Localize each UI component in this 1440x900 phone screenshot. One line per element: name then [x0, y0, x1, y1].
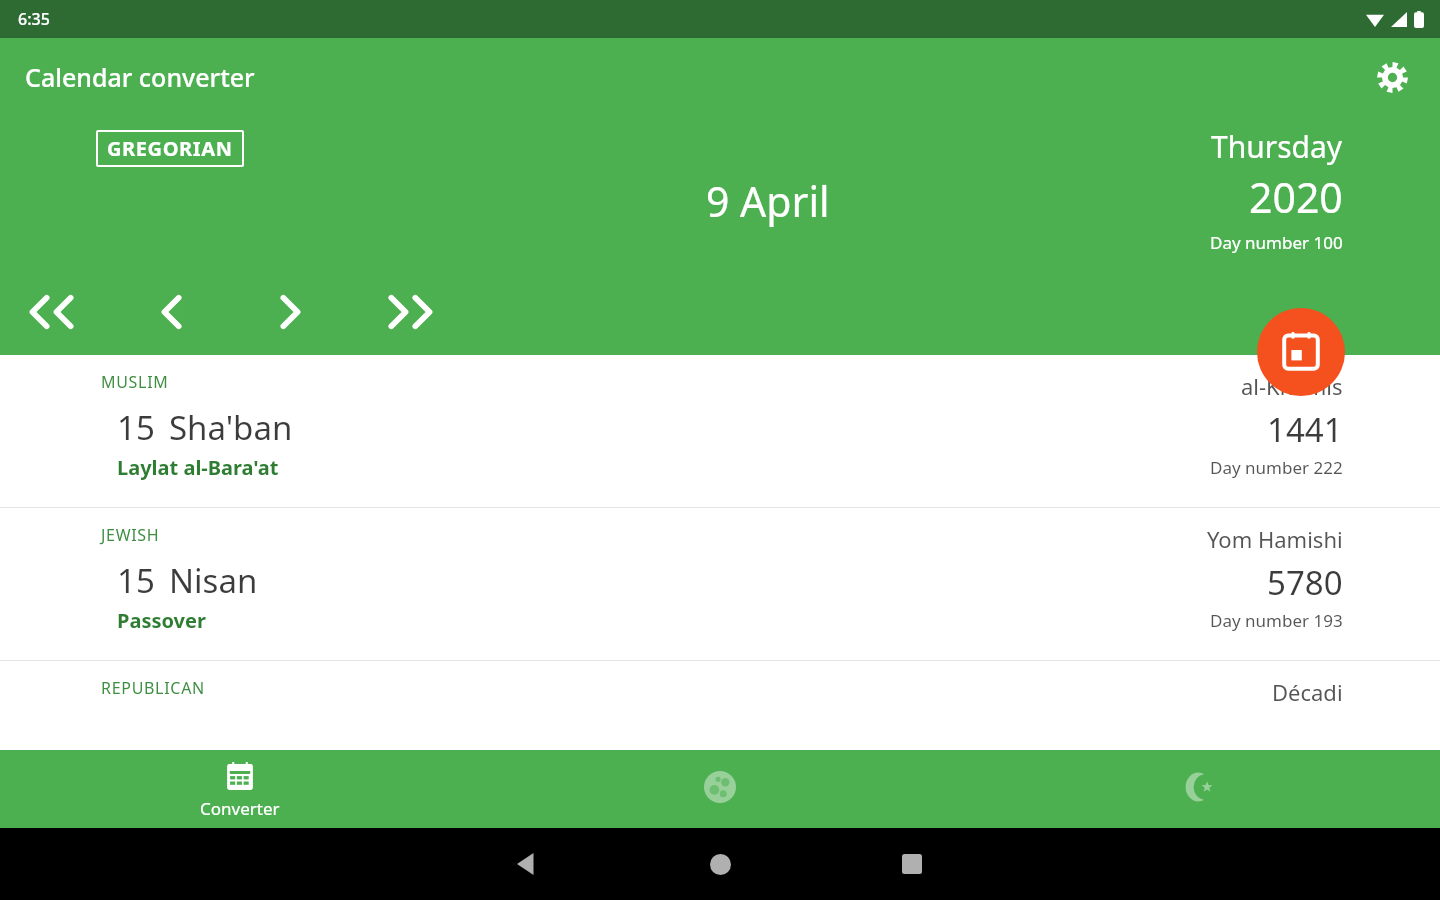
staticText: Day number 222: [1210, 456, 1343, 479]
staticText: 15: [117, 558, 155, 603]
staticText: GREGORIAN: [107, 135, 233, 162]
staticText: 2020: [1249, 169, 1343, 225]
staticText: Day number 100: [1210, 231, 1343, 254]
staticText: Nisan: [169, 558, 258, 603]
button[interactable]: REPUBLICAN: [0, 661, 1440, 750]
staticText: MUSLIM: [101, 371, 169, 393]
staticText: Décadi: [1272, 677, 1343, 707]
button[interactable]: Next month: [260, 283, 322, 341]
button[interactable]: World: [480, 750, 960, 828]
staticText: 5780: [1267, 560, 1343, 605]
button[interactable]: Converter: [0, 750, 480, 828]
staticText: Yom Hamishi: [1207, 524, 1343, 554]
staticText: JEWISH: [101, 524, 160, 546]
staticText: 1441: [1267, 407, 1343, 452]
button[interactable]: JEWISH: [0, 508, 1440, 660]
staticText: 9 April: [706, 173, 830, 229]
button[interactable]: Pick date: [1257, 308, 1345, 396]
button[interactable]: Previous year: [20, 283, 82, 341]
button[interactable]: Recents: [884, 836, 940, 892]
button[interactable]: GREGORIAN: [96, 130, 244, 167]
staticText: Laylat al-Bara'at: [117, 454, 279, 481]
staticText: 15: [117, 405, 155, 450]
button[interactable]: Home: [692, 836, 748, 892]
staticText: Thursday: [1211, 126, 1343, 167]
staticText: Sha'ban: [169, 405, 293, 450]
button[interactable]: Back: [500, 836, 556, 892]
button[interactable]: Next year: [380, 283, 442, 341]
button[interactable]: Previous month: [140, 283, 202, 341]
button[interactable]: Islamic calendar: [960, 750, 1440, 828]
button[interactable]: MUSLIM: [0, 355, 1440, 507]
staticText: Passover: [117, 607, 206, 634]
staticText: REPUBLICAN: [101, 677, 205, 699]
staticText: al-Khamis: [1241, 371, 1343, 401]
staticText: Day number 193: [1210, 609, 1343, 632]
staticText: Calendar converter: [25, 60, 255, 94]
staticText: Converter: [200, 797, 280, 820]
button[interactable]: Settings: [1368, 53, 1416, 101]
staticText: 6:35: [18, 8, 50, 30]
